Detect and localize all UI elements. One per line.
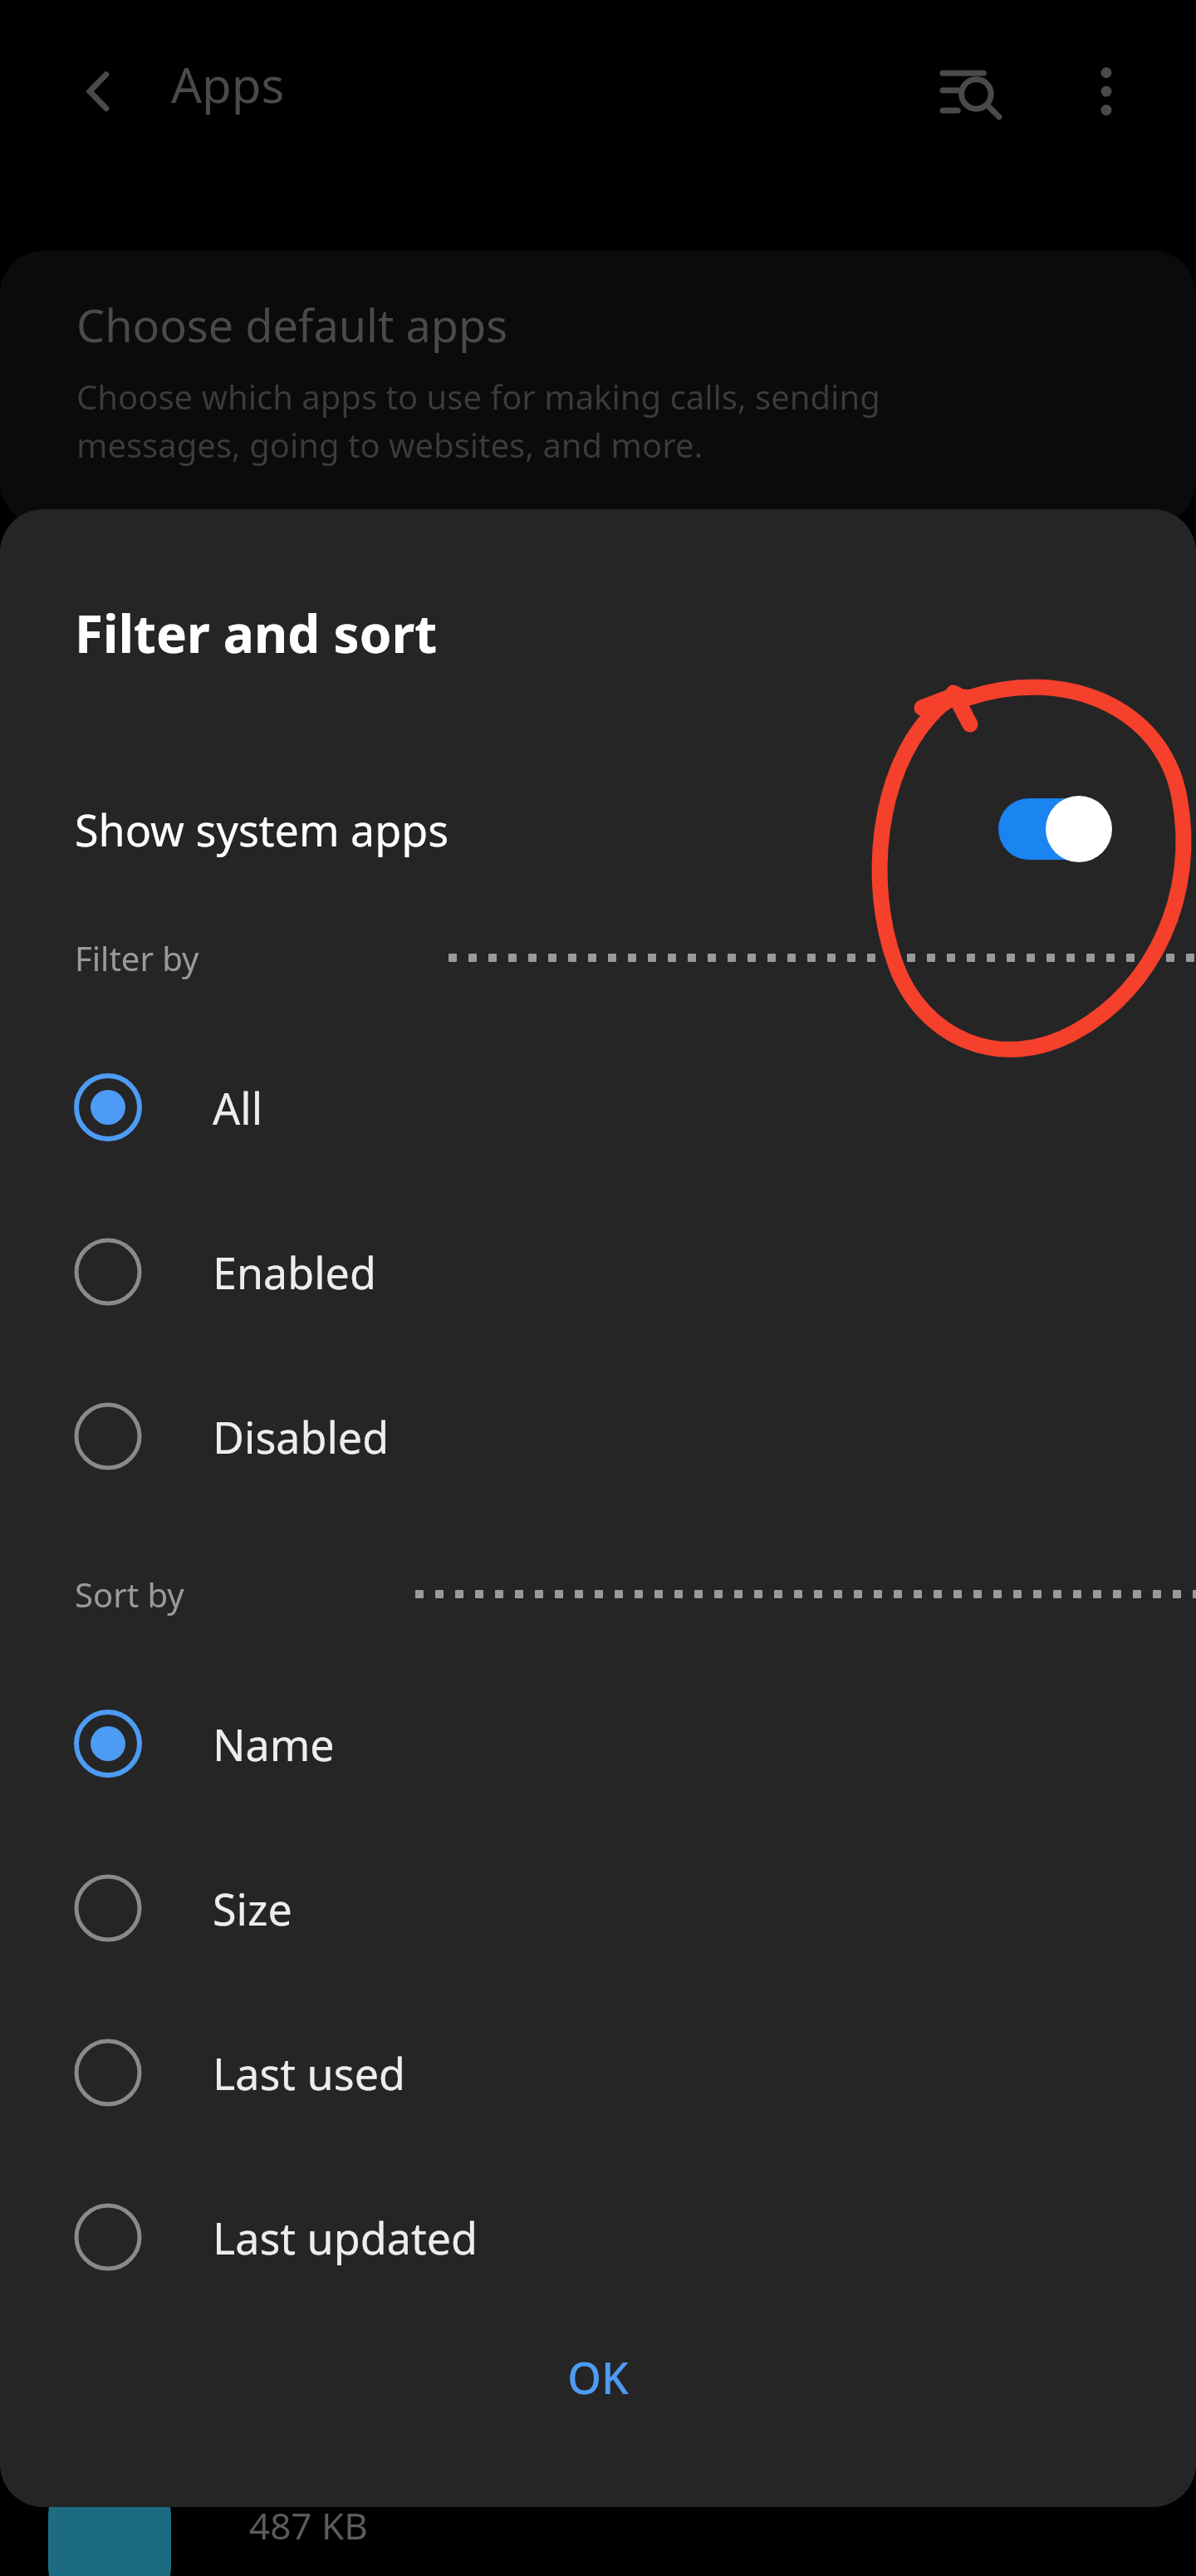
button[interactable]: More options (1071, 58, 1141, 125)
staticText: All (213, 1078, 263, 1137)
staticText: Choose which apps to use for making call… (76, 374, 880, 467)
button[interactable]: Last updated (0, 2171, 1196, 2304)
staticText: Enabled (213, 1243, 376, 1302)
staticText: 487 KB (249, 2500, 368, 2550)
staticText: Apps (171, 52, 285, 117)
button[interactable]: Show system apps (0, 760, 1196, 898)
staticText: Filter and sort (75, 598, 438, 668)
button[interactable]: All (0, 1041, 1196, 1174)
staticText: Show system apps (75, 800, 449, 859)
button[interactable]: Back (66, 58, 133, 125)
staticText: Disabled (213, 1407, 390, 1466)
staticText: Filter by (75, 935, 199, 980)
staticText: Last updated (213, 2208, 478, 2267)
button[interactable]: Disabled (0, 1370, 1196, 1503)
button[interactable]: Show system apps toggle (998, 798, 1113, 860)
staticText: Choose default apps (76, 294, 508, 356)
staticText: Size (213, 1879, 292, 1938)
button[interactable]: Last used (0, 2006, 1196, 2139)
button[interactable]: Size (0, 1842, 1196, 1975)
button[interactable]: Name (0, 1677, 1196, 1810)
button[interactable]: OK (509, 2326, 687, 2428)
button[interactable]: Enabled (0, 1205, 1196, 1338)
staticText: OK (567, 2348, 629, 2407)
button[interactable]: Choose default apps (0, 251, 1196, 525)
button[interactable]: Search (930, 58, 1010, 125)
staticText: Sort by (75, 1572, 184, 1617)
staticText: Name (213, 1715, 335, 1774)
staticText: Last used (213, 2044, 405, 2103)
